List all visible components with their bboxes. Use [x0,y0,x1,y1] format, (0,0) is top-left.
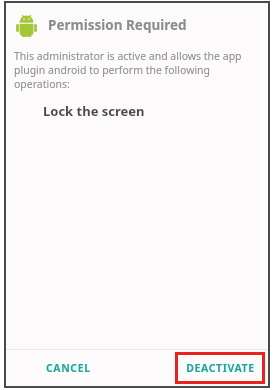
staticText: Lock the screen [43,102,145,120]
other: Android app icon [15,13,38,38]
staticText: DEACTIVATE [186,361,255,375]
button[interactable]: DEACTIVATE [175,352,265,384]
staticText: CANCEL [46,361,91,375]
staticText: This administrator is active and allows … [14,49,262,91]
button[interactable]: CANCEL [34,354,103,382]
staticText: Permission Required [48,16,187,34]
